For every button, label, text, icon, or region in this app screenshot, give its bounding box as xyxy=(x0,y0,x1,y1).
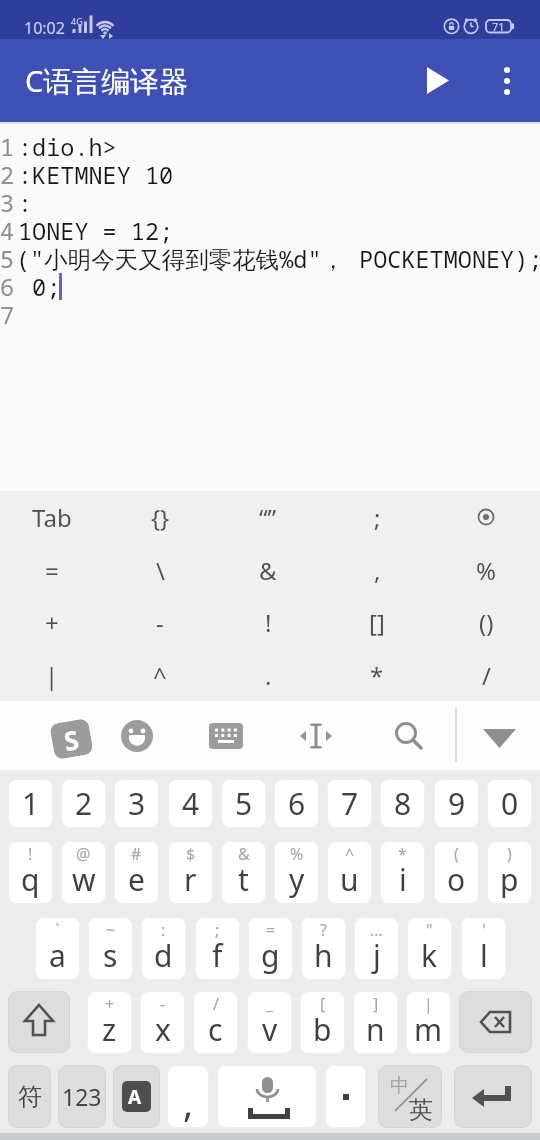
button[interactable]: , xyxy=(337,544,417,596)
button[interactable]: % xyxy=(446,544,526,596)
button[interactable]: ` xyxy=(35,917,80,980)
button[interactable]: * xyxy=(337,649,417,701)
button[interactable]: ? xyxy=(301,917,346,980)
button[interactable]: # xyxy=(114,841,159,904)
button[interactable] xyxy=(209,723,243,749)
button[interactable] xyxy=(299,722,333,750)
button[interactable]: S xyxy=(49,718,94,760)
button[interactable]: ~ xyxy=(88,917,133,980)
staticText: 1 xyxy=(0,131,15,161)
button[interactable] xyxy=(454,1065,532,1128)
staticText: w xyxy=(72,859,96,900)
button[interactable]: ( xyxy=(434,841,479,904)
staticText: :KETMNEY 10 xyxy=(18,159,174,189)
button[interactable]: / xyxy=(193,991,238,1054)
button[interactable]: = xyxy=(12,544,92,596)
button[interactable]: @ xyxy=(61,841,106,904)
button[interactable]: ; xyxy=(195,917,240,980)
button[interactable]: ; xyxy=(337,491,417,543)
button[interactable] xyxy=(217,1065,317,1128)
button[interactable]: 1 xyxy=(8,779,53,828)
button[interactable] xyxy=(121,720,153,752)
button[interactable]: [ xyxy=(300,991,345,1054)
button[interactable]: 7 xyxy=(327,779,372,828)
button[interactable]: " xyxy=(407,917,452,980)
staticText: l xyxy=(480,935,488,976)
button[interactable]: … xyxy=(354,917,399,980)
button[interactable]: = xyxy=(248,917,293,980)
button[interactable]: ' xyxy=(461,917,506,980)
staticText: \ xyxy=(156,554,165,587)
button[interactable] xyxy=(8,991,70,1053)
staticText: x xyxy=(155,1009,171,1050)
button[interactable]: ! xyxy=(228,596,308,648)
button[interactable]: Tab xyxy=(12,491,92,543)
button[interactable] xyxy=(393,720,425,752)
staticText: | xyxy=(45,659,59,692)
staticText: * xyxy=(398,843,407,865)
button[interactable]: 3 xyxy=(114,779,159,828)
button[interactable]: () xyxy=(446,596,526,648)
button[interactable]: A xyxy=(113,1065,160,1128)
button[interactable] xyxy=(409,67,465,95)
button[interactable]: & xyxy=(228,544,308,596)
staticText: ` xyxy=(55,919,60,941)
button[interactable] xyxy=(479,724,519,752)
staticText: 8 xyxy=(394,783,412,824)
staticText: a xyxy=(49,935,66,976)
button[interactable]: 123 xyxy=(58,1065,106,1128)
staticText: ? xyxy=(320,919,327,941)
staticText: & xyxy=(238,843,250,865)
staticText: “” xyxy=(259,501,277,534)
staticText: & xyxy=(259,554,277,587)
button[interactable]: * xyxy=(380,841,425,904)
staticText: 7 xyxy=(341,783,359,824)
button[interactable]: + xyxy=(12,596,92,648)
staticText: z xyxy=(102,1009,117,1050)
button[interactable]: 4 xyxy=(168,779,213,828)
button[interactable]: , xyxy=(167,1065,209,1128)
button[interactable]: % xyxy=(274,841,319,904)
staticText: 0 xyxy=(501,783,519,824)
button[interactable] xyxy=(325,1065,366,1128)
button[interactable]: - xyxy=(140,991,185,1054)
button[interactable]: $ xyxy=(168,841,213,904)
staticText: = xyxy=(45,554,59,587)
button[interactable]: 5 xyxy=(221,779,266,828)
button[interactable]: 9 xyxy=(434,779,479,828)
button[interactable]: 0 xyxy=(487,779,532,828)
button[interactable]: : xyxy=(141,917,186,980)
button[interactable]: | xyxy=(406,991,451,1054)
staticText: % xyxy=(476,554,496,587)
button[interactable]: “” xyxy=(228,491,308,543)
button[interactable]: | xyxy=(12,649,92,701)
staticText: c xyxy=(208,1009,223,1050)
button[interactable] xyxy=(466,497,506,537)
staticText: 10:02 xyxy=(24,17,65,37)
button[interactable]: 8 xyxy=(380,779,425,828)
button[interactable]: _ xyxy=(247,991,292,1054)
button[interactable]: 中 xyxy=(378,1065,442,1128)
staticText: 1 xyxy=(22,783,40,824)
button[interactable]: ) xyxy=(487,841,532,904)
staticText: Tab xyxy=(32,501,72,534)
staticText: + xyxy=(45,606,59,639)
button[interactable]: 符 xyxy=(8,1065,51,1128)
button[interactable]: - xyxy=(120,596,200,648)
button[interactable] xyxy=(459,991,532,1053)
button[interactable]: {} xyxy=(120,491,200,543)
button[interactable]: + xyxy=(87,991,132,1054)
button[interactable]: / xyxy=(446,649,526,701)
button[interactable]: [] xyxy=(337,596,417,648)
button[interactable]: ^ xyxy=(327,841,372,904)
button[interactable]: . xyxy=(228,649,308,701)
button[interactable]: \ xyxy=(120,544,200,596)
button[interactable]: & xyxy=(221,841,266,904)
button[interactable]: 2 xyxy=(61,779,106,828)
button[interactable]: ^ xyxy=(120,649,200,701)
button[interactable] xyxy=(489,62,525,100)
button[interactable]: ! xyxy=(8,841,53,904)
button[interactable]: 6 xyxy=(274,779,319,828)
staticText: i xyxy=(399,859,407,900)
button[interactable]: ] xyxy=(353,991,398,1054)
